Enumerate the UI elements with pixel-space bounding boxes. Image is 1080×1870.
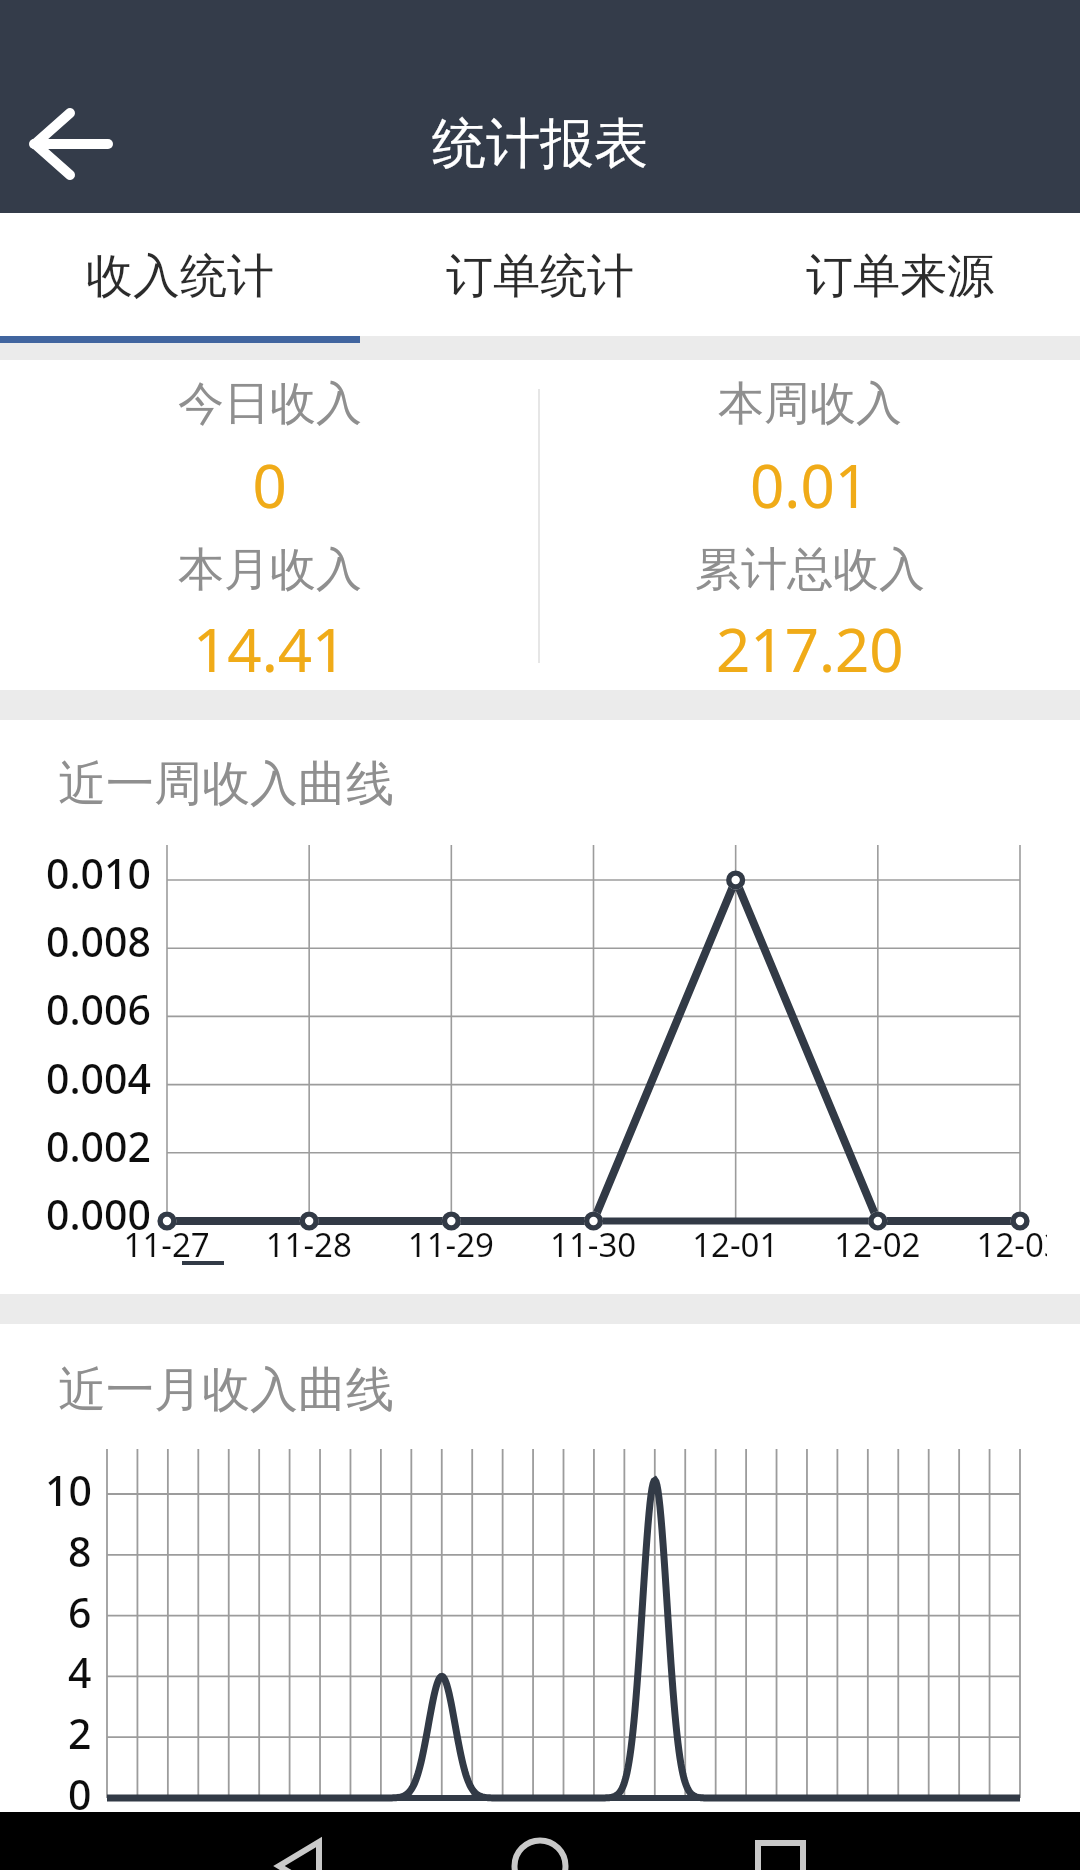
button[interactable]: Recent apps xyxy=(720,1812,1080,1870)
staticText: 订单来源 xyxy=(806,247,994,306)
button[interactable]: 收入统计 xyxy=(0,213,360,336)
button[interactable]: 近一月收入曲线 xyxy=(0,1324,1080,1870)
staticText: 订单统计 xyxy=(446,247,634,306)
button[interactable]: Back xyxy=(0,1812,360,1870)
button[interactable]: Back xyxy=(2,76,140,214)
button[interactable]: 订单来源 xyxy=(720,213,1080,336)
staticText: 收入统计 xyxy=(86,247,274,306)
button[interactable]: 近一周收入曲线 xyxy=(0,720,1080,1294)
button[interactable]: Home xyxy=(360,1812,720,1870)
button[interactable]: 订单统计 xyxy=(360,213,720,336)
